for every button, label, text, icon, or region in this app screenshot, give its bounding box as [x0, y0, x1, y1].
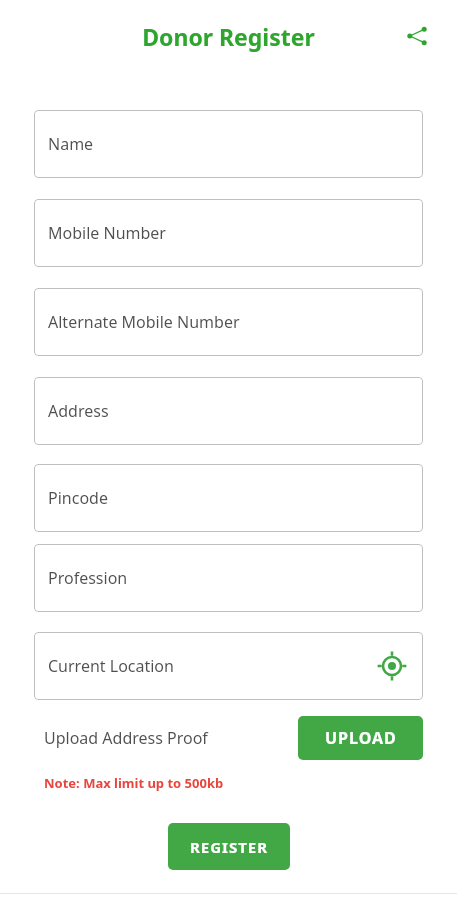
button[interactable]: Name [34, 110, 423, 178]
staticText: UPLOAD [325, 727, 397, 749]
button[interactable]: Pincode [34, 464, 423, 532]
staticText: Address [48, 400, 409, 422]
button[interactable]: Profession [34, 544, 423, 612]
staticText: Mobile Number [48, 222, 409, 244]
staticText: Profession [48, 567, 409, 589]
button[interactable]: Use current location [375, 649, 409, 683]
button[interactable]: UPLOAD [298, 716, 423, 760]
staticText: Name [48, 133, 409, 155]
button[interactable]: Alternate Mobile Number [34, 288, 423, 356]
staticText: Note: Max limit up to 500kb [44, 774, 224, 792]
staticText: Upload Address Proof [44, 727, 298, 749]
button[interactable]: REGISTER [168, 823, 290, 870]
staticText: Alternate Mobile Number [48, 311, 409, 333]
button[interactable]: Current Location [34, 632, 423, 700]
staticText: Donor Register [142, 21, 315, 52]
button[interactable]: Mobile Number [34, 199, 423, 267]
staticText: Current Location [48, 655, 375, 677]
staticText: Pincode [48, 487, 409, 509]
button[interactable]: Address [34, 377, 423, 445]
staticText: REGISTER [190, 837, 269, 857]
button[interactable]: Share [397, 16, 437, 56]
